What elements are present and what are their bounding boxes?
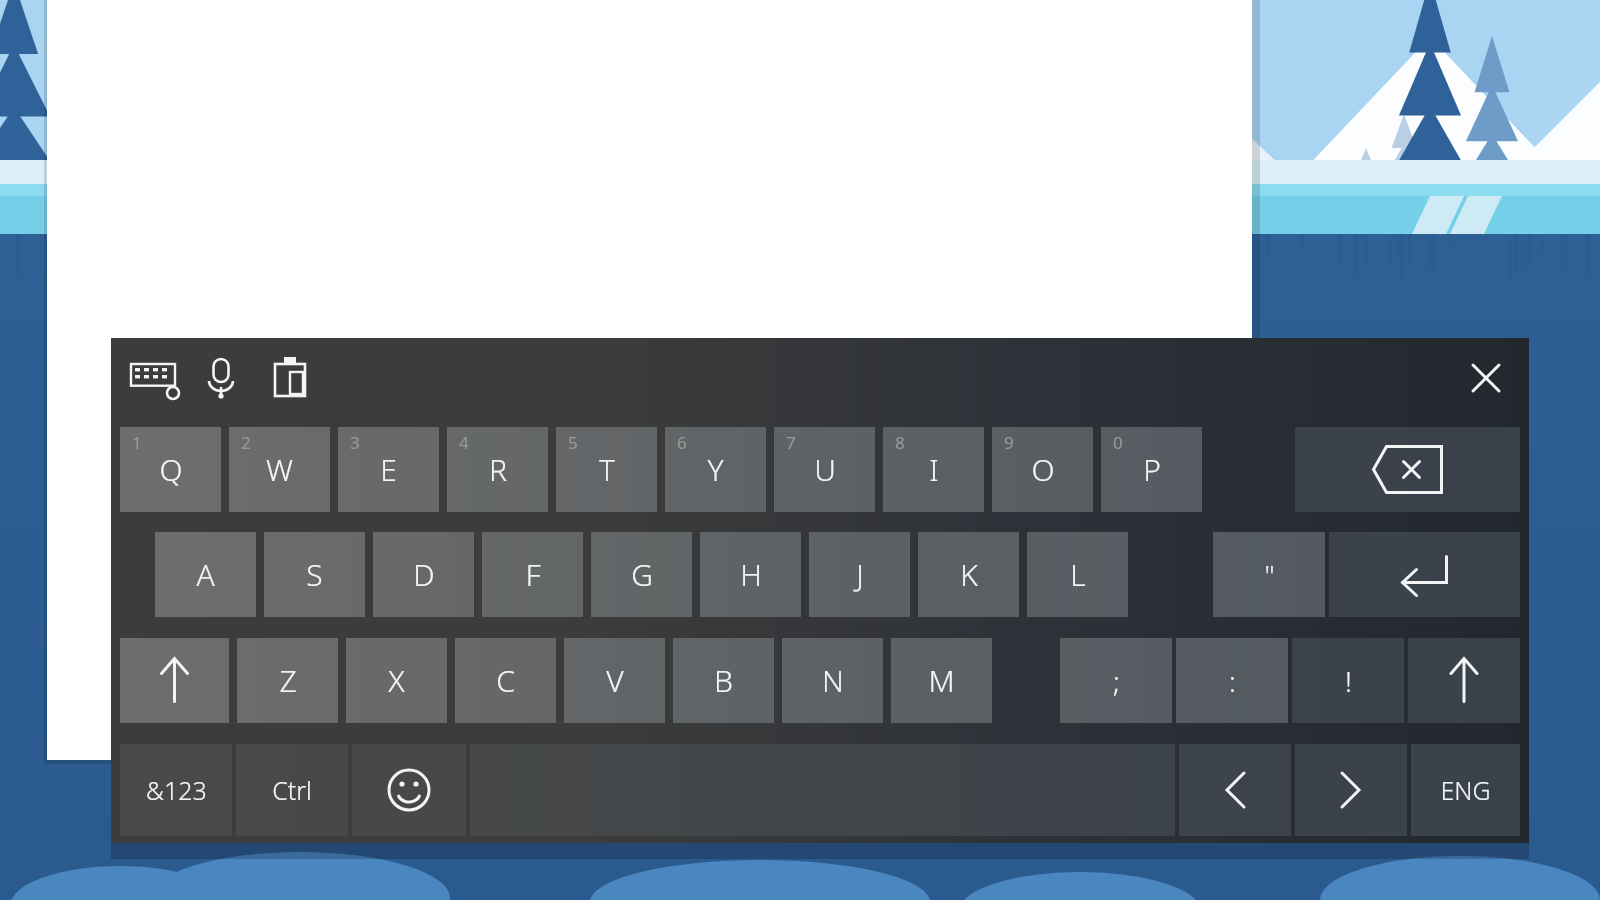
staticText: B (714, 660, 733, 701)
staticText: C (496, 660, 515, 701)
staticText: U (814, 449, 836, 490)
button[interactable]: A (155, 532, 256, 617)
button[interactable]: : (1176, 638, 1288, 723)
button[interactable]: 2 (229, 427, 330, 512)
button[interactable]: Z (237, 638, 338, 723)
button[interactable]: C (455, 638, 556, 723)
staticText: X (388, 660, 405, 701)
staticText: ENG (1440, 773, 1491, 807)
staticText: 4 (459, 431, 469, 454)
staticText: 7 (786, 431, 796, 454)
staticText: " (1264, 556, 1275, 594)
staticText: &123 (146, 773, 207, 807)
button[interactable]: Keyboard settings (127, 352, 179, 404)
button[interactable]: 4 (447, 427, 548, 512)
button[interactable]: Right (1295, 744, 1407, 836)
button[interactable]: N (782, 638, 883, 723)
staticText: 8 (895, 431, 905, 454)
staticText: Y (707, 449, 724, 490)
staticText: Ctrl (272, 773, 312, 807)
button[interactable]: Clipboard (264, 352, 316, 404)
staticText: V (606, 660, 624, 701)
staticText: R (489, 449, 507, 490)
button[interactable]: Close keyboard (1459, 352, 1513, 404)
button[interactable]: 6 (665, 427, 766, 512)
button[interactable]: Voice input (195, 352, 247, 404)
button[interactable]: 5 (556, 427, 657, 512)
button[interactable]: S (264, 532, 365, 617)
button[interactable]: " (1213, 532, 1325, 617)
staticText: : (1229, 662, 1236, 700)
button[interactable]: Control (236, 744, 348, 836)
staticText: W (266, 449, 293, 490)
button[interactable]: 1 (120, 427, 221, 512)
button[interactable]: 0 (1101, 427, 1202, 512)
staticText: Z (279, 660, 297, 701)
staticText: 0 (1113, 431, 1123, 454)
staticText: J (856, 554, 864, 595)
staticText: I (929, 449, 939, 490)
staticText: E (380, 449, 397, 490)
staticText: O (1031, 449, 1055, 490)
button[interactable]: 9 (992, 427, 1093, 512)
staticText: A (196, 554, 215, 595)
button[interactable]: F (482, 532, 583, 617)
button[interactable]: L (1027, 532, 1128, 617)
staticText: F (525, 554, 541, 595)
button[interactable]: G (591, 532, 692, 617)
button[interactable]: 3 (338, 427, 439, 512)
staticText: L (1070, 554, 1086, 595)
staticText: P (1143, 449, 1161, 490)
button[interactable]: Emoji (352, 744, 466, 836)
staticText: 1 (132, 431, 142, 454)
staticText: M (928, 660, 955, 701)
button[interactable]: Backspace (1295, 427, 1520, 512)
button[interactable]: K (918, 532, 1019, 617)
button[interactable]: ! (1292, 638, 1404, 723)
staticText: ; (1113, 662, 1120, 700)
button[interactable]: Enter (1329, 532, 1520, 617)
staticText: 9 (1004, 431, 1014, 454)
staticText: K (960, 554, 978, 595)
staticText: S (306, 554, 323, 595)
staticText: T (599, 449, 615, 490)
button[interactable]: B (673, 638, 774, 723)
staticText: 2 (241, 431, 251, 454)
button[interactable]: Left (1179, 744, 1291, 836)
staticText: Q (159, 449, 183, 490)
button[interactable]: H (700, 532, 801, 617)
button[interactable]: 8 (883, 427, 984, 512)
button[interactable]: M (891, 638, 992, 723)
button[interactable]: D (373, 532, 474, 617)
button[interactable]: Language (1411, 744, 1520, 836)
button[interactable]: J (809, 532, 910, 617)
button[interactable]: Shift (120, 638, 229, 723)
staticText: H (740, 554, 762, 595)
staticText: ! (1345, 662, 1352, 700)
button[interactable]: X (346, 638, 447, 723)
button[interactable]: Shift (1408, 638, 1520, 723)
button[interactable]: ; (1060, 638, 1172, 723)
button[interactable]: 7 (774, 427, 875, 512)
staticText: G (631, 554, 653, 595)
staticText: D (413, 554, 435, 595)
staticText: N (822, 660, 844, 701)
button[interactable]: Symbols (120, 744, 232, 836)
staticText: 5 (568, 431, 578, 454)
button[interactable]: V (564, 638, 665, 723)
staticText: 3 (350, 431, 360, 454)
staticText: 6 (677, 431, 687, 454)
